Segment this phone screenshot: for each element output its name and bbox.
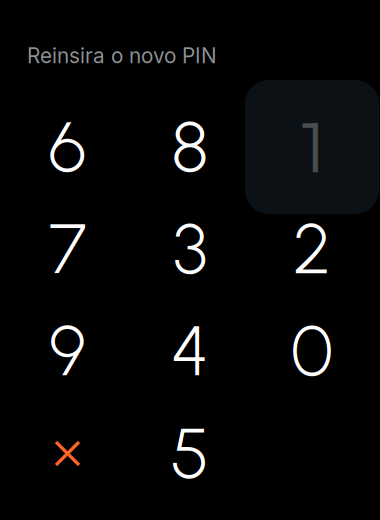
button[interactable]: 8 — [123, 80, 257, 214]
staticText: 7 — [49, 206, 86, 291]
staticText: 0 — [291, 308, 333, 393]
button[interactable]: 5 — [123, 386, 257, 520]
button[interactable]: 0 — [245, 284, 379, 418]
staticText: 3 — [173, 206, 207, 291]
staticText: 9 — [49, 308, 86, 393]
button[interactable]: Delete — [0, 386, 134, 520]
button[interactable]: 3 — [123, 182, 257, 316]
button[interactable]: 4 — [123, 284, 257, 418]
button[interactable]: 1 — [245, 80, 379, 214]
button[interactable]: 7 — [0, 182, 134, 316]
button[interactable]: 9 — [0, 284, 134, 418]
staticText: 6 — [48, 104, 86, 189]
staticText: 1 — [300, 101, 324, 190]
staticText: 4 — [171, 308, 209, 393]
button[interactable]: 6 — [0, 80, 134, 214]
button[interactable]: 2 — [245, 182, 379, 316]
staticText: 8 — [171, 104, 208, 189]
staticText: 2 — [293, 206, 331, 291]
staticText: 5 — [170, 411, 209, 495]
staticText: Reinsira o novo PIN — [27, 43, 217, 68]
